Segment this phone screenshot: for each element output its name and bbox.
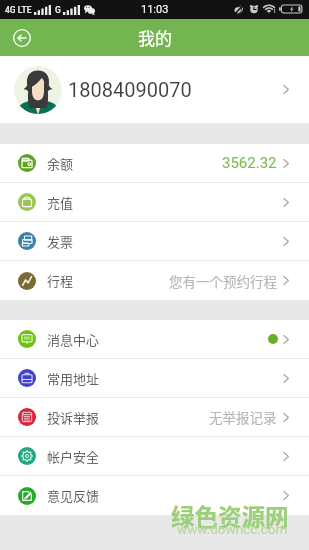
staticText: 无举报记录 [209,407,277,427]
button[interactable]: 充值 [0,183,309,221]
button[interactable]: 帐户安全 [0,437,309,475]
staticText: 我的 [138,25,172,50]
button[interactable]: 投诉举报 [0,398,309,436]
button[interactable]: 意见反馈 [0,476,309,515]
staticText: 充值 [47,193,74,212]
staticText: 意见反馈 [47,486,100,505]
button[interactable]: Back [6,22,38,54]
button[interactable]: 行程 [0,261,309,300]
staticText: 常用地址 [47,369,100,388]
staticText: G [55,5,61,15]
button[interactable]: 发票 [0,222,309,260]
button[interactable]: 消息中心 [0,320,309,358]
staticText: 3562.32 [222,154,277,172]
staticText: 您有一个预约行程 [169,271,277,291]
button[interactable]: 余额 [0,144,309,182]
staticText: 18084090070 [68,78,192,101]
staticText: www.downcc.com [177,521,288,537]
staticText: 消息中心 [47,330,100,349]
staticText: 行程 [47,271,74,290]
staticText: 4G LTE [5,5,32,15]
staticText: 投诉举报 [47,408,100,427]
staticText: 绿色资源网 [171,499,289,533]
staticText: 发票 [47,232,74,251]
button[interactable]: 18084090070 [0,56,309,123]
staticText: 帐户安全 [47,447,100,466]
staticText: 11:03 [141,3,169,16]
button[interactable]: 常用地址 [0,359,309,397]
staticText: 余额 [47,154,74,173]
